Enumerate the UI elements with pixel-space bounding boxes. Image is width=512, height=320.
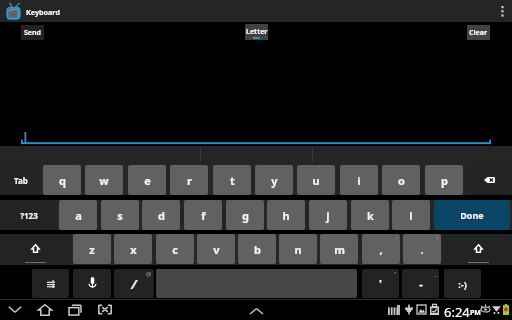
- button[interactable]: j: [309, 200, 347, 230]
- staticText: b: [254, 242, 261, 257]
- staticText: i: [357, 173, 361, 188]
- button[interactable]: Backspace: [468, 165, 511, 195]
- button[interactable]: u: [297, 165, 335, 195]
- button[interactable]: s: [101, 200, 139, 230]
- staticText: s: [117, 208, 123, 223]
- staticText: @: [146, 270, 152, 278]
- button[interactable]: n: [279, 234, 317, 264]
- button[interactable]: r: [170, 165, 208, 195]
- button[interactable]: :-): [444, 269, 481, 298]
- button[interactable]: x: [114, 234, 152, 264]
- button[interactable]: k: [351, 200, 389, 230]
- staticText: Clear: [469, 28, 488, 38]
- staticText: k: [367, 208, 374, 223]
- staticText: Send: [24, 28, 42, 38]
- button[interactable]: Tab: [2, 165, 39, 195]
- button[interactable]: p: [425, 165, 463, 195]
- other: Backspace: [484, 177, 495, 183]
- button[interactable]: e: [128, 165, 166, 195]
- button[interactable]: Shift: [444, 234, 512, 264]
- staticText: g: [242, 208, 249, 223]
- button[interactable]: l: [392, 200, 430, 230]
- button[interactable]: Shift: [2, 234, 69, 264]
- staticText: ?: [436, 235, 439, 243]
- staticText: 6:24: [444, 303, 470, 320]
- button[interactable]: g: [226, 200, 264, 230]
- staticText: h: [282, 208, 290, 223]
- staticText: ?123: [20, 210, 38, 221]
- button[interactable]: -: [402, 269, 439, 298]
- button[interactable]: More options: [492, 0, 512, 22]
- button[interactable]: Home: [34, 299, 56, 320]
- button[interactable]: Recent apps: [64, 299, 86, 320]
- button[interactable]: Exit fullscreen: [94, 299, 116, 320]
- button[interactable]: Done: [434, 200, 510, 230]
- button[interactable]: i: [340, 165, 378, 195]
- staticText: a: [75, 208, 82, 223]
- button[interactable]: o: [382, 165, 420, 195]
- button[interactable]: Send: [21, 25, 44, 40]
- button[interactable]: f: [184, 200, 222, 230]
- button[interactable]: z: [73, 234, 111, 264]
- staticText: w: [99, 173, 109, 188]
- staticText: n: [294, 242, 302, 257]
- button[interactable]: Hide keyboard: [4, 299, 26, 320]
- staticText: q: [59, 173, 66, 188]
- button[interactable]: y: [255, 165, 293, 195]
- staticText: -: [419, 276, 423, 291]
- staticText: PM: [470, 308, 481, 318]
- button[interactable]: b: [238, 234, 276, 264]
- staticText: ,: [379, 242, 383, 257]
- staticText: e: [144, 173, 151, 188]
- button[interactable]: t: [213, 165, 251, 195]
- staticText: t: [230, 173, 235, 188]
- staticText: d: [158, 208, 165, 223]
- staticText: Keyboard: [26, 7, 60, 17]
- button[interactable]: Text input: [21, 130, 491, 145]
- staticText: _: [434, 270, 437, 278]
- other: Keyboard settings: [47, 280, 55, 288]
- staticText: Done: [460, 209, 484, 221]
- button[interactable]: w: [85, 165, 123, 195]
- button[interactable]: Show notifications: [245, 302, 267, 320]
- staticText: :-): [458, 278, 467, 290]
- staticText: m: [334, 242, 345, 257]
- button[interactable]: h: [267, 200, 305, 230]
- other: Shift: [444, 234, 512, 264]
- button[interactable]: m: [320, 234, 358, 264]
- button[interactable]: ?123: [2, 200, 55, 230]
- staticText: Letter: [246, 27, 268, 37]
- staticText: v: [213, 242, 220, 257]
- staticText: j: [326, 208, 330, 223]
- button[interactable]: v: [197, 234, 235, 264]
- button[interactable]: Voice input: [73, 269, 111, 298]
- staticText: u: [312, 173, 320, 188]
- staticText: Tab: [14, 175, 28, 186]
- staticText: r: [187, 173, 192, 188]
- staticText: o: [398, 173, 405, 188]
- staticText: y: [271, 173, 278, 188]
- staticText: l: [409, 208, 413, 223]
- button[interactable]: .: [403, 234, 441, 264]
- staticText: ": [394, 270, 397, 278]
- button[interactable]: ,: [362, 234, 400, 264]
- other: Voice input: [88, 277, 97, 290]
- button[interactable]: Letter: [245, 24, 268, 40]
- staticText: c: [172, 242, 178, 257]
- staticText: f: [201, 208, 206, 223]
- staticText: p: [441, 173, 448, 188]
- staticText: !: [396, 235, 398, 243]
- button[interactable]: c: [156, 234, 194, 264]
- button[interactable]: d: [142, 200, 180, 230]
- staticText: /: [131, 275, 137, 293]
- button[interactable]: Clear: [467, 25, 490, 40]
- button[interactable]: q: [43, 165, 81, 195]
- button[interactable]: a: [59, 200, 97, 230]
- button[interactable]: Keyboard settings: [32, 269, 69, 298]
- staticText: x: [130, 242, 137, 257]
- button[interactable]: ': [362, 269, 399, 298]
- button[interactable]: /: [114, 269, 154, 298]
